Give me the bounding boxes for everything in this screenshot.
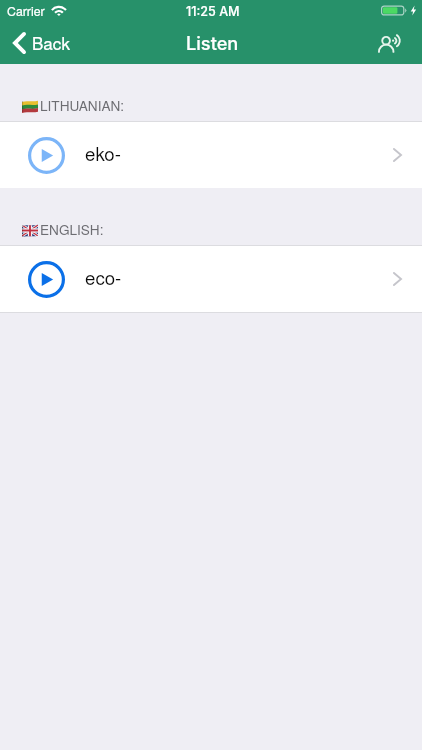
button[interactable]: eco- <box>0 246 422 312</box>
staticText: eco- <box>85 264 122 291</box>
staticText: LITHUANIAN: <box>40 95 125 114</box>
button[interactable]: Speak <box>378 34 422 52</box>
staticText: Carrier <box>7 2 45 20</box>
button[interactable]: Back <box>0 27 80 59</box>
staticText: eko- <box>85 140 121 167</box>
staticText: Listen <box>186 32 239 54</box>
staticText: 11:25 AM <box>186 4 240 19</box>
staticText: ENGLISH: <box>40 219 104 238</box>
button[interactable]: eko- <box>0 122 422 188</box>
staticText: Back <box>32 30 70 54</box>
